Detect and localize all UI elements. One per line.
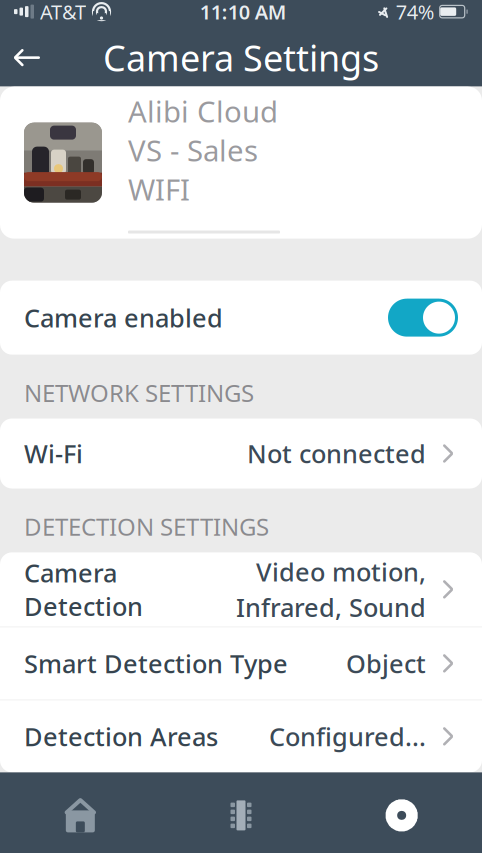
button[interactable]: Detection Areas xyxy=(0,700,482,772)
button[interactable]: Home xyxy=(0,772,161,853)
staticText: Wi-Fi xyxy=(24,437,83,470)
staticText: Alibi Cloud VS - Sales WIFI xyxy=(128,92,278,209)
staticText: Infrared, Sound xyxy=(236,590,426,624)
staticText: Not connected xyxy=(247,437,426,470)
button[interactable]: Camera Detection xyxy=(0,552,482,626)
staticText: Smart Detection Type xyxy=(24,647,288,680)
staticText: 11:10 AM xyxy=(200,0,287,25)
staticText: Camera Settings xyxy=(103,34,379,81)
button[interactable]: Settings xyxy=(321,772,482,853)
staticText: Camera enabled xyxy=(24,301,223,334)
staticText: Object xyxy=(346,647,426,680)
button[interactable]: Back xyxy=(0,31,54,85)
staticText: Detection Areas xyxy=(24,720,218,753)
staticText: Camera Detection xyxy=(24,556,143,623)
staticText: Configured... xyxy=(269,720,426,753)
staticText: Video motion, xyxy=(256,555,426,588)
staticText: DETECTION SETTINGS xyxy=(24,510,269,542)
button[interactable]: Wi-Fi xyxy=(0,418,482,488)
button[interactable]: Recordings xyxy=(161,772,321,853)
staticText: AT&T xyxy=(40,0,86,25)
staticText: NETWORK SETTINGS xyxy=(24,377,254,408)
button[interactable]: Smart Detection Type xyxy=(0,627,482,699)
button[interactable]: Camera enabled xyxy=(0,281,482,355)
staticText: 74% xyxy=(396,0,435,25)
